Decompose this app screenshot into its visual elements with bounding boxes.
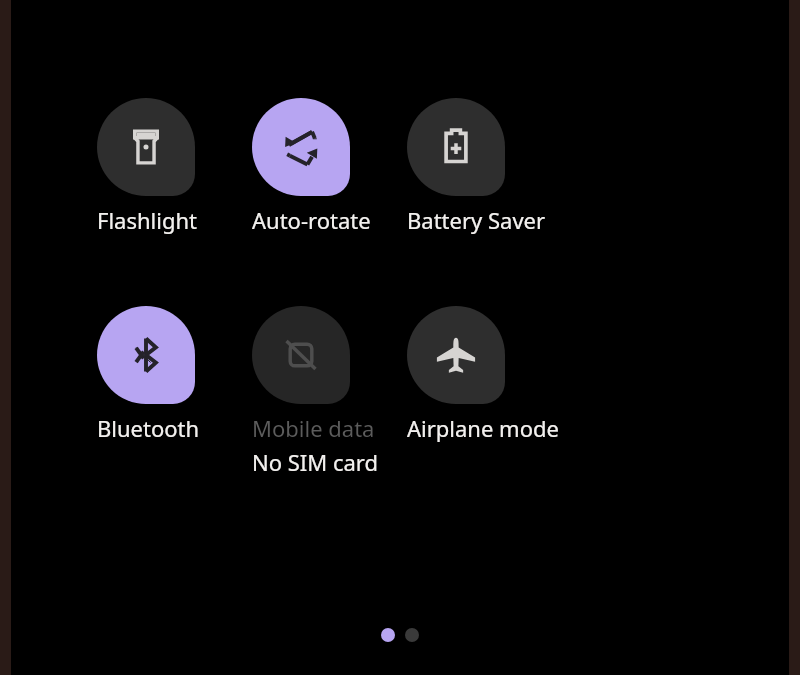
staticText: Flashlight xyxy=(97,205,197,235)
button[interactable]: Airplane mode xyxy=(407,306,505,404)
button[interactable]: Airplane mode xyxy=(407,306,562,443)
staticText: Airplane mode xyxy=(407,413,559,443)
staticText: Mobile data xyxy=(252,413,375,443)
button[interactable]: Mobile data xyxy=(252,306,407,477)
button[interactable]: Flashlight xyxy=(97,98,252,235)
button[interactable]: Battery Saver xyxy=(407,98,505,196)
button[interactable]: Bluetooth xyxy=(97,306,252,443)
button[interactable]: Auto-rotate xyxy=(252,98,350,196)
button[interactable]: Auto-rotate xyxy=(252,98,407,235)
button[interactable]: Battery Saver xyxy=(407,98,562,235)
button[interactable]: Flashlight xyxy=(97,98,195,196)
staticText: Auto-rotate xyxy=(252,205,371,235)
staticText: Battery Saver xyxy=(407,205,546,235)
button[interactable]: Bluetooth xyxy=(97,306,195,404)
button[interactable]: Mobile data xyxy=(252,306,350,404)
staticText: No SIM card xyxy=(252,447,379,477)
staticText: Bluetooth xyxy=(97,413,200,443)
